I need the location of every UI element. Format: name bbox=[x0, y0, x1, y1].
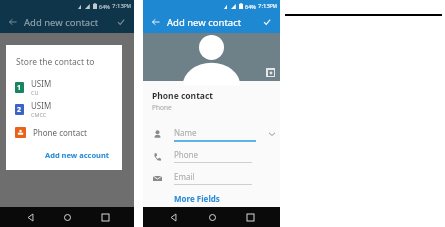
staticText: Phone contact bbox=[152, 90, 214, 102]
button[interactable]: 1 bbox=[6, 76, 122, 98]
staticText: More Fields bbox=[174, 193, 220, 204]
button[interactable]: Name bbox=[143, 123, 280, 145]
staticText: CMCC bbox=[31, 111, 47, 118]
button[interactable]: 2 bbox=[6, 98, 122, 120]
staticText: USIM bbox=[31, 100, 52, 111]
staticText: Email bbox=[174, 171, 195, 182]
button[interactable]: Save bbox=[259, 14, 275, 30]
staticText: 7:13 bbox=[258, 2, 270, 10]
button[interactable]: More Fields bbox=[143, 189, 280, 207]
staticText: 2 bbox=[17, 105, 22, 115]
button[interactable]: Back bbox=[165, 209, 181, 225]
button[interactable]: Expand name bbox=[266, 128, 278, 140]
button[interactable]: Add photo bbox=[143, 33, 280, 81]
staticText: Add new account bbox=[45, 150, 110, 160]
button[interactable]: Add new account bbox=[6, 144, 122, 166]
button[interactable]: Phone contact bbox=[6, 120, 122, 144]
staticText: Phone contact bbox=[33, 127, 87, 138]
button[interactable]: Home bbox=[204, 209, 220, 225]
staticText: 64% bbox=[245, 3, 256, 10]
staticText: CU bbox=[31, 89, 39, 96]
button[interactable]: Back bbox=[4, 13, 22, 31]
button[interactable]: Email bbox=[143, 167, 280, 189]
staticText: 7:13 bbox=[112, 2, 124, 10]
button[interactable]: Back bbox=[147, 13, 165, 31]
button[interactable]: Back bbox=[22, 209, 38, 225]
staticText: Add new contact bbox=[167, 16, 242, 29]
button[interactable]: Recents bbox=[242, 209, 258, 225]
staticText: Phone bbox=[152, 103, 172, 112]
staticText: 1 bbox=[17, 83, 22, 93]
staticText: USIM bbox=[31, 78, 52, 89]
button[interactable]: Save bbox=[113, 14, 129, 30]
staticText: Name bbox=[174, 127, 197, 138]
staticText: 64% bbox=[99, 3, 110, 10]
staticText: Add new contact bbox=[24, 16, 99, 29]
button[interactable]: Recents bbox=[97, 209, 113, 225]
staticText: PM bbox=[270, 3, 277, 9]
button[interactable]: Phone bbox=[143, 145, 280, 167]
staticText: Store the contact to bbox=[16, 56, 95, 68]
staticText: Phone bbox=[174, 149, 199, 160]
staticText: PM bbox=[124, 3, 131, 9]
button[interactable]: Home bbox=[59, 209, 75, 225]
